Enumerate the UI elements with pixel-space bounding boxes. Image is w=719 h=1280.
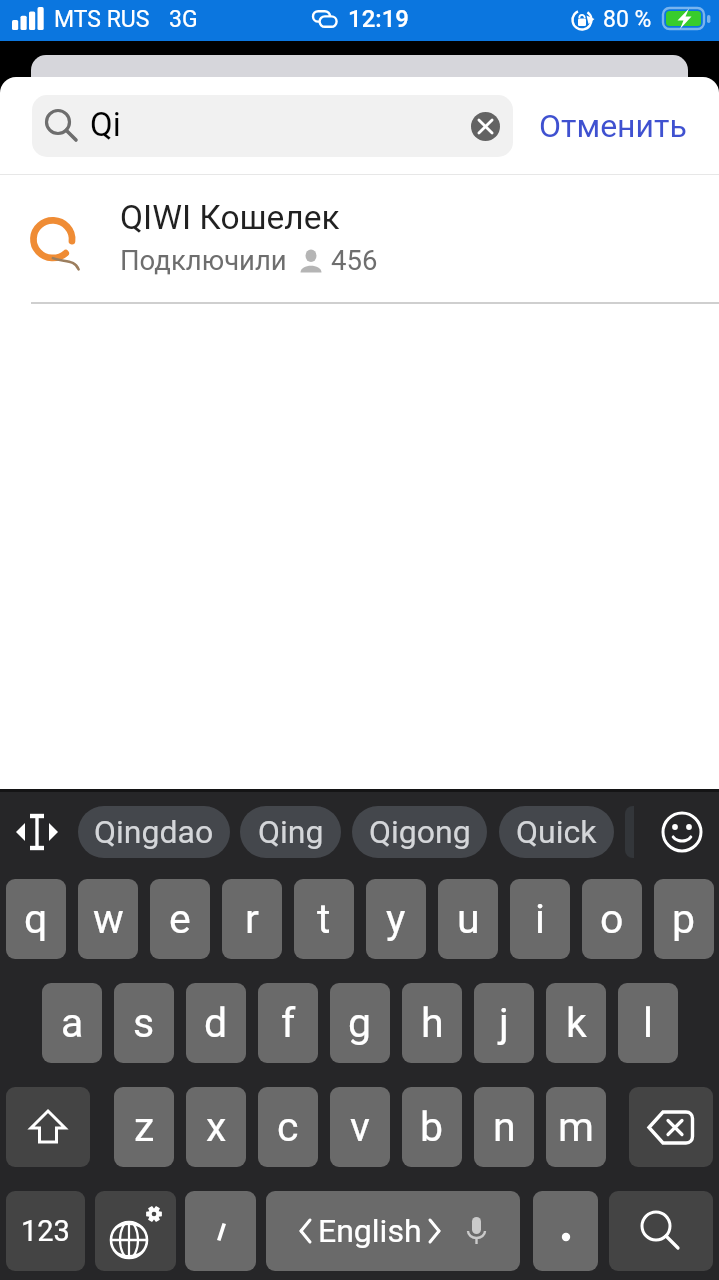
staticText: Qigong [369,813,471,851]
staticText: r [245,895,259,943]
button[interactable]: Period [533,1191,598,1271]
staticText: v [350,1103,370,1151]
staticText: j [499,999,509,1047]
button[interactable]: m [546,1087,606,1167]
staticText: o [600,895,624,943]
button[interactable]: Qingdao [78,806,230,858]
staticText: Quick [516,813,597,851]
staticText: g [348,999,372,1047]
staticText: k [566,999,587,1047]
staticText: English [318,1212,422,1250]
staticText: x [206,1103,227,1151]
button[interactable]: Numbers [6,1191,85,1271]
button[interactable]: Emoji [634,804,690,860]
button[interactable]: Clear text [471,112,500,141]
staticText: Qi [90,105,121,144]
button[interactable]: u [438,879,498,959]
button[interactable]: Qi [32,95,513,157]
staticText: Qing [258,813,324,851]
staticText: QIWI Кошелек [120,198,340,237]
staticText: y [386,895,406,943]
button[interactable]: QIWI Кошелек [0,172,719,302]
button[interactable]: Qing [240,806,341,858]
staticText: s [133,999,155,1047]
button[interactable]: Shift [6,1087,90,1167]
button[interactable]: f [258,983,318,1063]
button[interactable]: z [114,1087,174,1167]
button[interactable]: n [474,1087,534,1167]
button[interactable]: English [266,1191,520,1271]
button[interactable]: k [546,983,606,1063]
staticText: Подключили [120,244,287,276]
staticText: q [24,895,48,943]
staticText: l [643,999,653,1047]
button[interactable]: i [510,879,570,959]
staticText: 80 % [603,6,652,33]
staticText: m [558,1103,594,1151]
button[interactable]: x [186,1087,246,1167]
staticText: n [493,1103,516,1151]
button[interactable]: Qigong [352,806,487,858]
button[interactable]: d [186,983,246,1063]
staticText: t [317,895,331,943]
staticText: 12:19 [348,5,409,33]
staticText: u [457,895,480,943]
button[interactable]: j [474,983,534,1063]
button[interactable]: Change keyboard [95,1191,176,1271]
staticText: Отменить [539,107,687,145]
staticText: Qingdao [94,813,214,851]
button[interactable]: b [402,1087,462,1167]
button[interactable]: e [150,879,210,959]
button[interactable]: q [6,879,66,959]
button[interactable]: g [330,983,390,1063]
staticText: f [281,999,296,1047]
button[interactable]: Backspace [629,1087,713,1167]
button[interactable]: y [366,879,426,959]
button[interactable]: Quick [499,806,614,858]
button[interactable]: Search [609,1191,713,1271]
button[interactable]: Отменить [525,95,701,157]
staticText: 3G [169,6,198,33]
button[interactable]: Move cursor [8,806,66,858]
staticText: p [672,895,696,943]
button[interactable]: p [654,879,714,959]
staticText: 123 [21,1214,70,1248]
staticText: z [134,1103,155,1151]
button[interactable]: h [402,983,462,1063]
staticText: c [277,1103,299,1151]
button[interactable]: v [330,1087,390,1167]
staticText: a [61,999,84,1047]
staticText: b [420,1103,444,1151]
staticText: w [93,895,124,943]
staticText: d [204,999,228,1047]
staticText: e [169,895,191,943]
button[interactable]: w [78,879,138,959]
button[interactable]: Comma [185,1191,256,1271]
staticText: 456 [331,244,378,276]
button[interactable]: t [294,879,354,959]
button[interactable]: a [42,983,102,1063]
button[interactable]: r [222,879,282,959]
staticText: h [421,999,444,1047]
staticText: MTS RUS [54,6,150,33]
button[interactable]: s [114,983,174,1063]
button[interactable]: c [258,1087,318,1167]
staticText: i [535,895,545,943]
button[interactable]: l [618,983,678,1063]
button[interactable]: o [582,879,642,959]
